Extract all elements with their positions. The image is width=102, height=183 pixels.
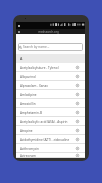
button[interactable]: Acetylsalicylsäure - Tylenol <box>16 63 85 72</box>
button[interactable]: Amoxicillin <box>16 99 85 108</box>
staticText: Search by name... <box>23 45 50 49</box>
button[interactable]: Search by name... <box>18 43 83 51</box>
staticText: Acetylsalicylsäure - Tylenol <box>20 66 76 70</box>
button[interactable]: Aztreonam <box>16 153 85 158</box>
button[interactable]: Menu <box>16 29 21 34</box>
button[interactable]: Atropine <box>16 126 85 135</box>
staticText: Acetylsalicylic acid (ASA) - Aspirin <box>20 120 76 124</box>
staticText: Azidothymidine (AZT) - zidovudine <box>20 138 76 142</box>
staticText: medsearch.org <box>38 30 59 34</box>
staticText: Alprazolam - Xanax <box>20 84 76 88</box>
staticText: A <box>20 56 23 61</box>
button[interactable]: Azithromycin <box>16 144 85 153</box>
staticText: Atropine <box>20 129 76 133</box>
button[interactable]: Alprazolam - Xanax <box>16 81 85 90</box>
button[interactable]: Allopurinol <box>16 72 85 81</box>
staticText: Amoxicillin <box>20 102 76 106</box>
staticText: Allopurinol <box>20 75 76 79</box>
button[interactable]: Amlodipine <box>16 90 85 99</box>
staticText: Aztreonam <box>20 154 76 158</box>
staticText: Azithromycin <box>20 147 76 151</box>
staticText: Amphetamin-B <box>20 111 76 115</box>
staticText: Amlodipine <box>20 93 76 97</box>
button[interactable]: Acetylsalicylic acid (ASA) - Aspirin <box>16 117 85 126</box>
button[interactable]: Azidothymidine (AZT) - zidovudine <box>16 135 85 144</box>
button[interactable]: Amphetamin-B <box>16 108 85 117</box>
